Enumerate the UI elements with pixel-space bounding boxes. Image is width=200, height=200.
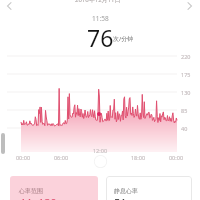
button[interactable]: 心率范围 xyxy=(10,176,98,200)
staticText: 76 xyxy=(87,22,114,53)
staticText: 2016年12月11日 xyxy=(75,0,121,4)
staticText: 85 xyxy=(181,107,188,114)
staticText: 175 xyxy=(181,71,191,78)
staticText: 130 xyxy=(181,89,191,96)
button[interactable]: Previous day xyxy=(1,0,17,10)
staticText: 12:00 xyxy=(89,147,111,154)
staticText: 44~139 xyxy=(19,195,57,200)
staticText: 51 xyxy=(114,195,127,200)
button[interactable]: 静息心率 xyxy=(106,176,192,200)
staticText: 18:00 xyxy=(127,154,149,161)
button[interactable]: Next day xyxy=(182,0,198,10)
staticText: 06:00 xyxy=(50,154,72,161)
staticText: 静息心率 xyxy=(114,187,138,195)
staticText: 心率范围 xyxy=(19,187,43,195)
staticText: 11:58 xyxy=(92,14,109,23)
staticText: 00:00 xyxy=(165,154,187,161)
staticText: 00:00 xyxy=(12,154,34,161)
staticText: 220 xyxy=(181,53,191,60)
staticText: 次/分钟 xyxy=(113,35,134,43)
staticText: 40 xyxy=(181,125,188,132)
